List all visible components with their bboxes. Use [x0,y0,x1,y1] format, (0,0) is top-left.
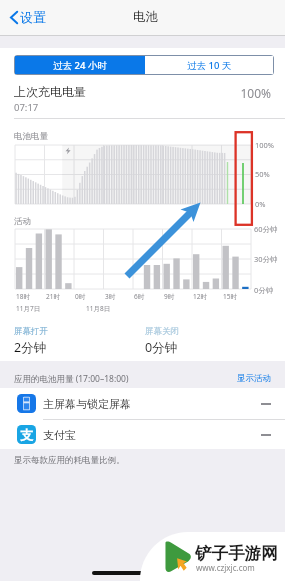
staticText: 30分钟 [254,254,278,264]
staticText: 设置 [20,9,46,25]
staticText: 电池 [133,9,158,25]
staticText: www.czjxjc.com [196,562,255,573]
button[interactable]: 显示活动 [0,373,271,384]
staticText: 50% [255,169,270,179]
button[interactable]: 支 [0,420,285,449]
staticText: 07:17 [14,101,39,114]
staticText: 60分钟 [254,224,278,234]
staticText: 应用的电池用量 (17:00–18:00) [14,373,129,385]
staticText: 屏幕打开 [14,326,48,337]
staticText: 18时 [16,292,30,301]
staticText: 0% [255,199,266,209]
staticText: 0分钟 [254,285,274,295]
staticText: 电池电量 [14,131,48,142]
staticText: 15时 [223,292,237,301]
staticText: 屏幕关闭 [145,326,179,337]
staticText: 上次充电电量 [14,84,86,99]
staticText: 0时 [75,292,86,301]
button[interactable]: 过去 24 小时 [15,56,145,74]
staticText: 9时 [164,292,175,301]
staticText: 0分钟 [145,339,178,356]
button[interactable]: 主屏幕与锁定屏幕 [0,388,285,419]
button[interactable]: 过去 10 天 [145,56,273,74]
staticText: 6时 [134,292,145,301]
staticText: 支 [20,427,33,443]
staticText: 过去 24 小时 [53,59,107,72]
button[interactable]: 返回设置 [10,9,46,25]
staticText: 2分钟 [14,339,47,356]
staticText: 12时 [193,292,207,301]
staticText: 21时 [46,292,60,301]
staticText: 3时 [105,292,116,301]
staticText: 过去 10 天 [187,59,232,72]
staticText: 主屏幕与锁定屏幕 [43,397,131,411]
staticText: 铲子手游网 [195,543,278,564]
staticText: 100% [255,140,275,150]
staticText: 11月7日 [16,304,41,313]
staticText: 显示每款应用的耗电量比例。 [14,455,125,466]
staticText: 支付宝 [43,428,76,442]
staticText: 100% [0,85,271,101]
staticText: 11月8日 [86,304,111,313]
staticText: 活动 [14,216,31,227]
